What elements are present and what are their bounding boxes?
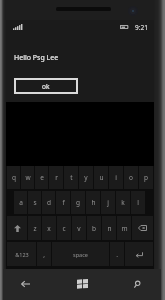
button[interactable]: d xyxy=(42,191,55,214)
staticText: k xyxy=(121,198,125,207)
staticText: y xyxy=(84,173,88,182)
button[interactable]: m xyxy=(117,216,131,240)
button[interactable]: . xyxy=(110,242,124,266)
staticText: g xyxy=(76,198,80,207)
other: Backspace xyxy=(138,225,147,231)
button[interactable]: Shift xyxy=(7,216,27,240)
staticText: l xyxy=(137,198,139,207)
staticText: n xyxy=(107,224,112,233)
button[interactable]: t xyxy=(64,166,78,189)
staticText: d xyxy=(47,198,51,207)
staticText: r xyxy=(55,173,58,182)
staticText: space xyxy=(73,251,88,258)
button[interactable]: i xyxy=(109,166,123,189)
staticText: Hello Psg Lee xyxy=(14,53,59,63)
button[interactable]: y xyxy=(79,166,93,189)
button[interactable]: n xyxy=(102,216,116,240)
button[interactable]: Enter xyxy=(125,242,153,266)
button[interactable]: Backspace xyxy=(132,216,153,240)
button[interactable]: e xyxy=(35,166,48,189)
button[interactable]: l xyxy=(131,191,145,214)
staticText: z xyxy=(33,224,37,233)
staticText: p xyxy=(144,173,148,182)
button[interactable]: , xyxy=(37,242,51,266)
button[interactable]: space xyxy=(52,242,109,266)
staticText: &123 xyxy=(15,251,29,258)
button[interactable]: &123 xyxy=(7,242,36,266)
staticText: e xyxy=(40,173,44,182)
staticText: f xyxy=(62,198,65,207)
staticText: , xyxy=(43,250,45,259)
button[interactable]: u xyxy=(94,166,108,189)
staticText: t xyxy=(70,173,73,182)
other: Enter xyxy=(135,251,143,258)
staticText: j xyxy=(107,198,109,207)
staticText: x xyxy=(47,224,51,233)
staticText: u xyxy=(99,173,104,182)
button[interactable]: o xyxy=(124,166,138,189)
staticText: o xyxy=(129,173,133,182)
button[interactable]: v xyxy=(72,216,86,240)
staticText: h xyxy=(91,198,96,207)
staticText: v xyxy=(77,224,81,233)
staticText: w xyxy=(25,173,31,182)
staticText: m xyxy=(121,224,128,233)
staticText: q xyxy=(12,173,16,182)
staticText: ok xyxy=(42,82,50,91)
staticText: 9:21 xyxy=(135,23,148,32)
other: Shift xyxy=(14,225,21,232)
button[interactable]: ok xyxy=(14,78,78,94)
button[interactable]: p xyxy=(139,166,153,189)
button[interactable]: z xyxy=(28,216,41,240)
staticText: . xyxy=(116,250,118,259)
button[interactable]: x xyxy=(42,216,56,240)
button[interactable]: s xyxy=(28,191,41,214)
button[interactable]: a xyxy=(14,191,27,214)
button[interactable]: k xyxy=(116,191,130,214)
button[interactable]: w xyxy=(21,166,34,189)
button[interactable]: Back xyxy=(14,273,36,295)
button[interactable]: b xyxy=(87,216,101,240)
button[interactable]: g xyxy=(71,191,85,214)
staticText: a xyxy=(19,198,23,207)
button[interactable]: Search xyxy=(126,273,148,295)
button[interactable]: f xyxy=(56,191,70,214)
button[interactable]: r xyxy=(49,166,63,189)
staticText: b xyxy=(92,224,96,233)
staticText: c xyxy=(62,224,66,233)
button[interactable]: h xyxy=(86,191,100,214)
staticText: i xyxy=(115,173,117,182)
button[interactable]: q xyxy=(7,166,20,189)
button[interactable]: c xyxy=(57,216,71,240)
button[interactable]: j xyxy=(101,191,115,214)
staticText: s xyxy=(33,198,37,207)
button[interactable]: Start xyxy=(71,272,93,294)
